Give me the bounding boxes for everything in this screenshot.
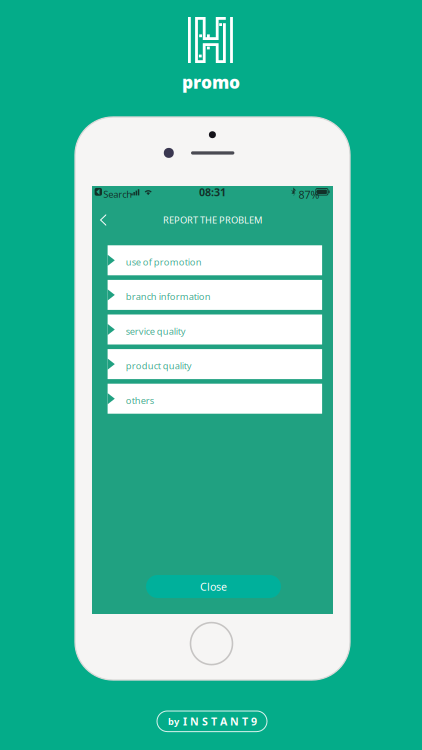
staticText: promo <box>182 70 240 93</box>
staticText: Search <box>103 188 132 200</box>
staticText: service quality <box>126 325 186 337</box>
staticText: branch information <box>126 290 211 303</box>
staticText: Close <box>200 579 227 594</box>
button[interactable]: use of promotion <box>108 245 322 275</box>
staticText: product quality <box>126 359 192 372</box>
button[interactable]: product quality <box>108 349 322 379</box>
staticText: 08:31 <box>199 185 226 199</box>
button[interactable]: Back <box>90 205 116 235</box>
staticText: others <box>126 394 154 406</box>
button[interactable]: Close <box>146 575 281 598</box>
button[interactable]: service quality <box>108 314 322 344</box>
staticText: 87% <box>299 188 320 202</box>
staticText: use of promotion <box>126 256 202 268</box>
button[interactable]: branch information <box>108 280 322 310</box>
staticText: I N S T A N T 9 <box>183 714 257 728</box>
staticText: REPORT THE PROBLEM <box>163 214 262 226</box>
staticText: by <box>168 715 179 727</box>
button[interactable]: others <box>108 384 322 414</box>
